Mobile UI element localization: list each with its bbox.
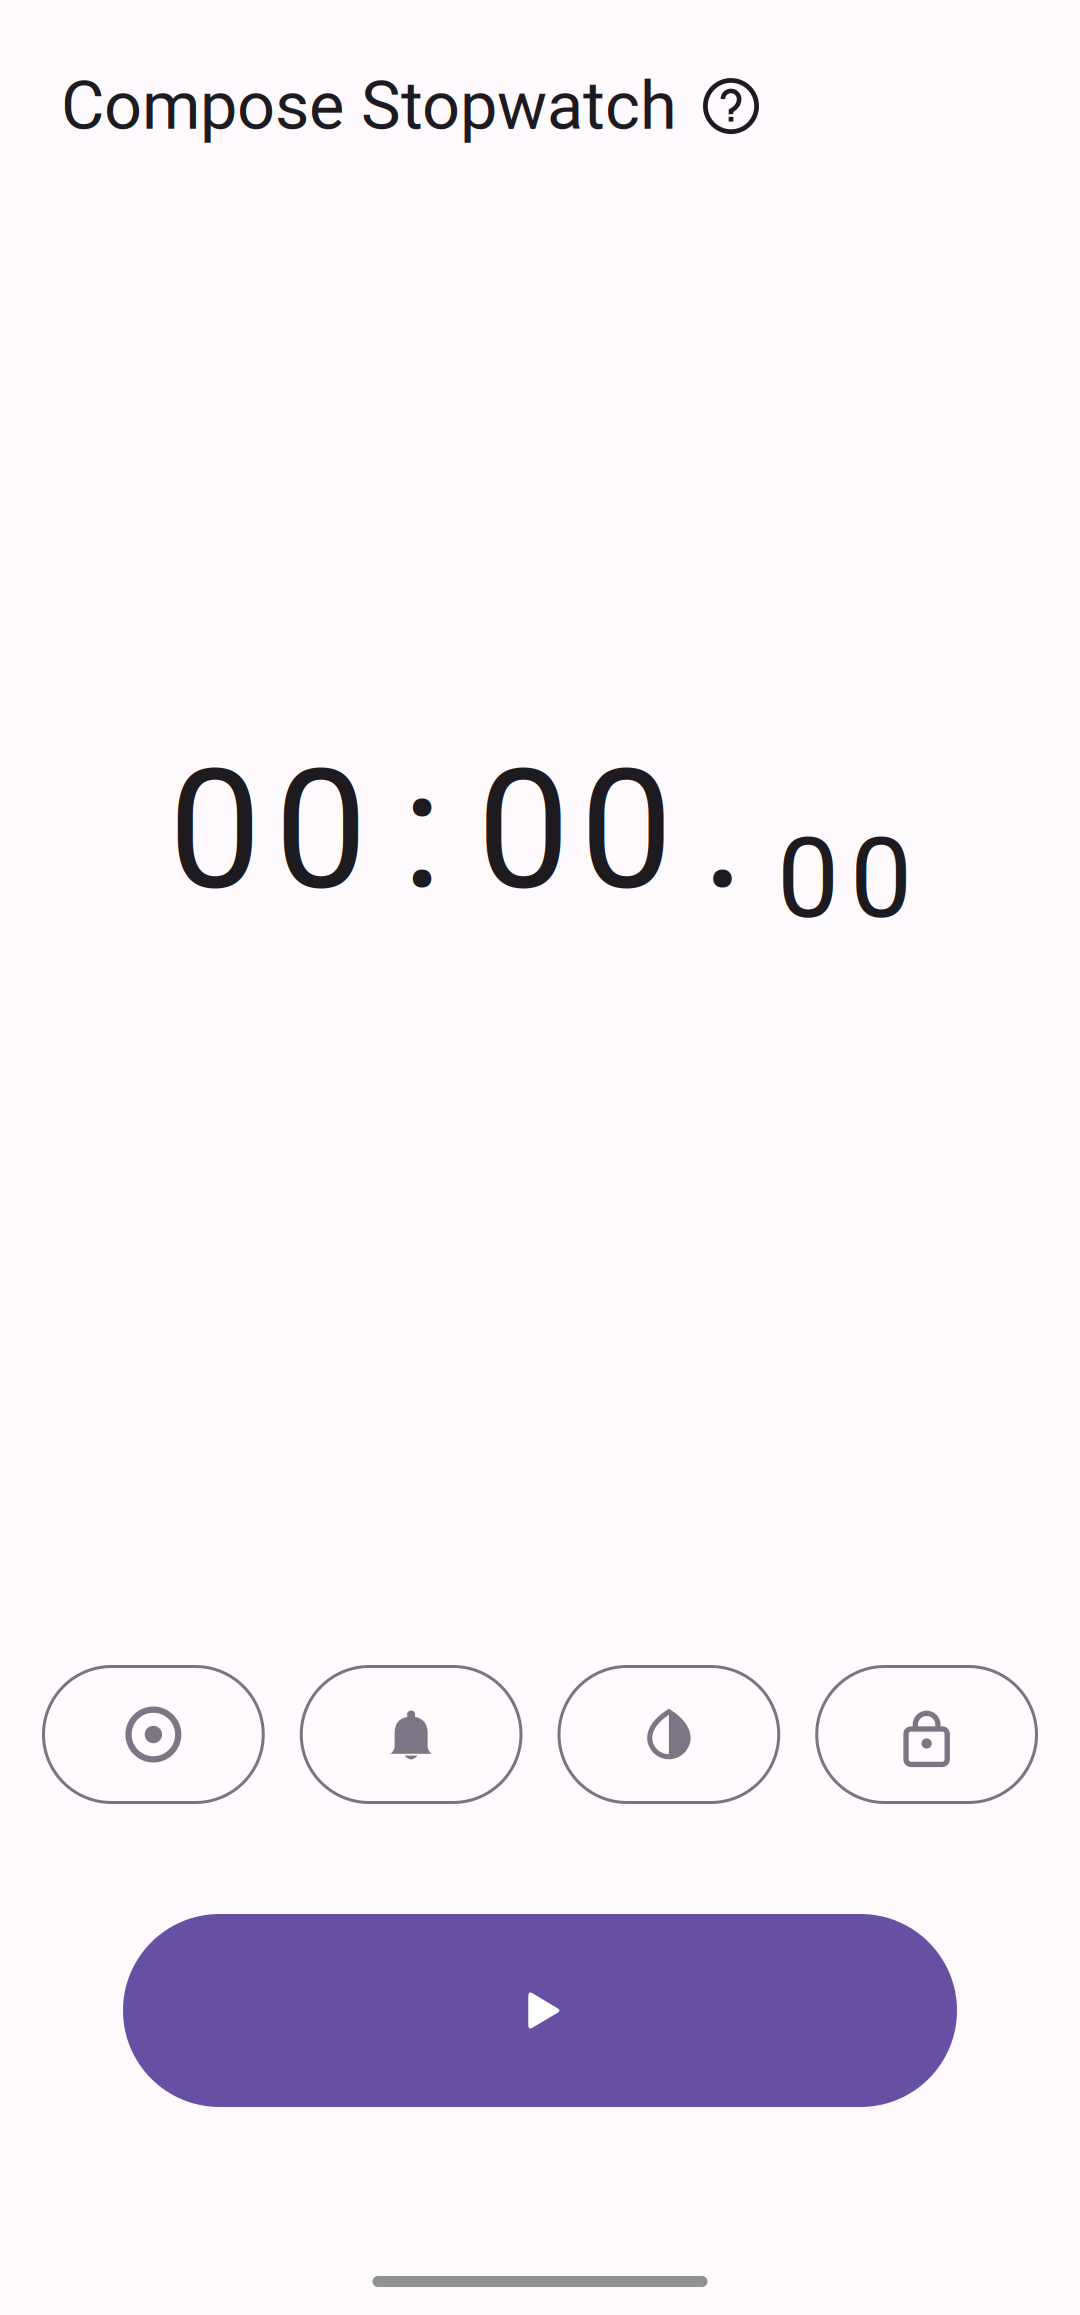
staticText: :	[402, 733, 442, 927]
button[interactable]: Theme	[557, 1665, 780, 1804]
staticText: 0	[777, 814, 839, 944]
button[interactable]: Lock	[815, 1665, 1038, 1804]
button[interactable]: Lap	[42, 1665, 265, 1804]
staticText: .	[701, 733, 745, 927]
staticText: 0	[477, 733, 570, 927]
staticText: 0	[168, 733, 261, 927]
button[interactable]: Alarm	[300, 1665, 523, 1804]
staticText: 0	[850, 814, 912, 944]
button[interactable]: Start	[123, 1914, 957, 2107]
staticText: Compose Stopwatch	[61, 67, 677, 145]
staticText: 0	[274, 733, 367, 927]
button[interactable]: Help	[703, 78, 759, 134]
staticText: 0	[580, 733, 673, 927]
